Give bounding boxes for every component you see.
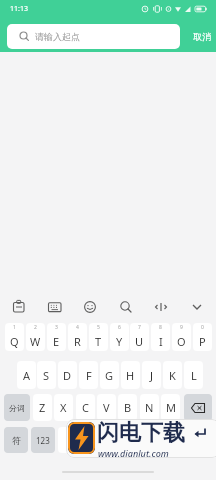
staticText: H	[126, 368, 135, 383]
staticText: 3	[55, 324, 58, 331]
staticText: Q	[10, 334, 19, 349]
staticText: O	[177, 334, 186, 349]
button[interactable]: A	[17, 361, 36, 389]
button[interactable]: H	[121, 361, 140, 389]
button[interactable]: S	[37, 361, 56, 389]
staticText: 2	[34, 324, 37, 331]
button[interactable]: 符	[4, 427, 28, 453]
button[interactable]	[79, 296, 101, 316]
button[interactable]	[8, 296, 30, 316]
button[interactable]: Z	[33, 394, 52, 421]
button[interactable]: B	[118, 394, 137, 421]
button[interactable]: J	[142, 361, 161, 389]
staticText: 11:13	[10, 4, 28, 14]
staticText: Z	[39, 400, 46, 415]
staticText: 5	[97, 324, 100, 331]
button[interactable]: 123	[31, 427, 55, 453]
button[interactable]: 2	[26, 323, 45, 351]
button[interactable]	[184, 394, 212, 421]
staticText: 取消	[193, 31, 211, 42]
button[interactable]: 9	[172, 323, 191, 351]
button[interactable]: V	[97, 394, 116, 421]
staticText: J	[150, 368, 154, 383]
button[interactable]	[58, 427, 158, 453]
staticText: 9	[180, 324, 183, 331]
staticText: 闪电下载	[97, 419, 185, 447]
staticText: G	[105, 368, 114, 383]
staticText: U	[135, 334, 144, 349]
button[interactable]: 1	[5, 323, 24, 351]
staticText: S	[43, 368, 50, 383]
staticText: 8	[159, 324, 162, 331]
button[interactable]: 5	[89, 323, 108, 351]
staticText: V	[103, 400, 110, 415]
staticText: A	[23, 368, 31, 383]
button[interactable]: L	[184, 361, 203, 389]
staticText: M	[166, 400, 176, 415]
staticText: C	[82, 400, 89, 415]
button[interactable]: 请输入起点	[7, 24, 180, 49]
staticText: W	[30, 334, 41, 349]
button[interactable]: 0	[193, 323, 212, 351]
button[interactable]: 分词	[4, 394, 30, 421]
button[interactable]: 7	[130, 323, 149, 351]
button[interactable]: M	[161, 394, 180, 421]
staticText: I	[159, 334, 163, 349]
button[interactable]: 4	[68, 323, 87, 351]
button[interactable]	[44, 296, 66, 316]
staticText: L	[191, 368, 197, 383]
staticText: F	[86, 368, 92, 383]
staticText: B	[124, 400, 132, 415]
button[interactable]: N	[140, 394, 159, 421]
staticText: P	[199, 334, 206, 349]
staticText: www.dianlut.com	[98, 447, 169, 459]
button[interactable]: 6	[110, 323, 129, 351]
button[interactable]: F	[79, 361, 98, 389]
button[interactable]: 取消	[188, 26, 216, 46]
button[interactable]	[161, 427, 212, 453]
button[interactable]: G	[100, 361, 119, 389]
staticText: 6	[118, 324, 121, 331]
button[interactable]: 8	[151, 323, 170, 351]
button[interactable]: C	[76, 394, 95, 421]
button[interactable]	[115, 296, 137, 316]
staticText: 请输入起点	[35, 31, 80, 42]
staticText: K	[169, 368, 176, 383]
staticText: 分词	[9, 403, 25, 413]
staticText: D	[63, 368, 72, 383]
button[interactable]: K	[163, 361, 182, 389]
button[interactable]: 3	[47, 323, 66, 351]
staticText: R	[74, 334, 81, 349]
staticText: T	[95, 334, 102, 349]
staticText: 符	[12, 435, 21, 446]
staticText: 4	[76, 324, 79, 331]
staticText: Y	[116, 334, 123, 349]
staticText: X	[60, 400, 67, 415]
button[interactable]: X	[54, 394, 73, 421]
staticText: 1	[13, 324, 16, 331]
button[interactable]	[150, 296, 172, 316]
button[interactable]	[186, 296, 208, 316]
staticText: 0	[201, 324, 204, 331]
staticText: E	[53, 334, 60, 349]
staticText: N	[145, 400, 154, 415]
staticText: 7	[138, 324, 141, 331]
button[interactable]: D	[58, 361, 77, 389]
staticText: 123	[36, 435, 50, 446]
